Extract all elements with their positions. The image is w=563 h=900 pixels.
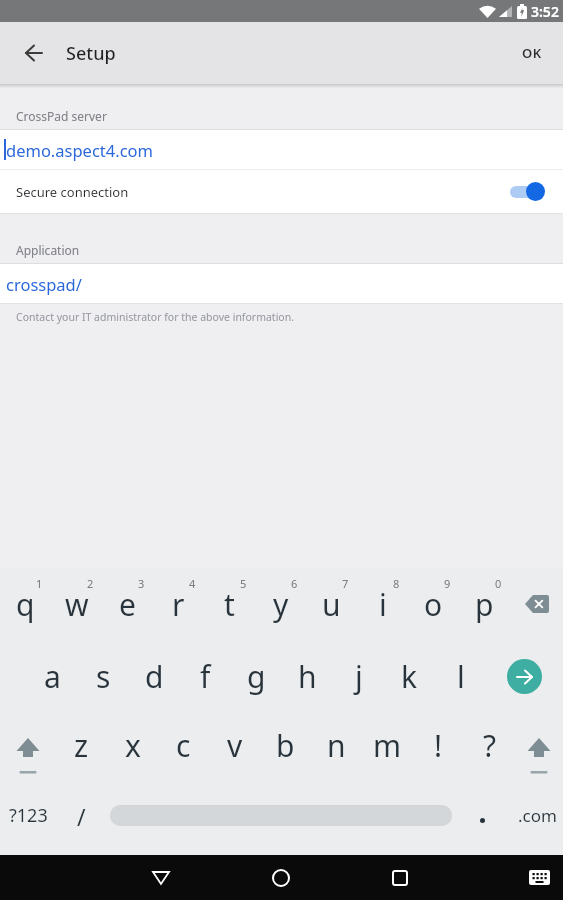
- button[interactable]: l: [435, 640, 486, 712]
- staticText: 3: [138, 576, 145, 591]
- button[interactable]: [0, 712, 56, 782]
- staticText: r: [172, 584, 185, 625]
- button[interactable]: 9: [408, 568, 459, 640]
- button[interactable]: OK: [517, 22, 547, 84]
- staticText: CrossPad server: [16, 108, 107, 124]
- button[interactable]: s: [78, 640, 129, 712]
- staticText: 5: [240, 576, 247, 591]
- staticText: o: [424, 584, 443, 625]
- staticText: .com: [518, 804, 557, 827]
- staticText: q: [16, 584, 35, 625]
- button[interactable]: crosspad/: [0, 264, 563, 303]
- staticText: 6: [291, 576, 298, 591]
- button[interactable]: Secure connection: [0, 170, 563, 213]
- button[interactable]: g: [231, 640, 282, 712]
- button[interactable]: [452, 782, 512, 855]
- staticText: 0: [495, 576, 502, 591]
- staticText: ?123: [9, 803, 48, 828]
- staticText: 8: [393, 576, 400, 591]
- button[interactable]: a: [27, 640, 78, 712]
- staticText: OK: [522, 44, 542, 62]
- button[interactable]: 0: [459, 568, 510, 640]
- staticText: Application: [16, 242, 80, 258]
- button[interactable]: v: [209, 712, 260, 782]
- button[interactable]: 7: [306, 568, 357, 640]
- button[interactable]: f: [180, 640, 231, 712]
- staticText: d: [145, 656, 164, 697]
- button[interactable]: .com: [512, 782, 563, 855]
- staticText: e: [119, 584, 136, 625]
- button[interactable]: h: [282, 640, 333, 712]
- staticText: 1: [36, 576, 43, 591]
- staticText: 2: [87, 576, 94, 591]
- button[interactable]: [139, 855, 183, 900]
- staticText: !: [434, 725, 443, 766]
- button[interactable]: z: [56, 712, 107, 782]
- staticText: i: [379, 584, 387, 625]
- staticText: b: [276, 725, 295, 766]
- button[interactable]: 1: [0, 568, 51, 640]
- staticText: t: [224, 584, 235, 625]
- staticText: y: [273, 584, 289, 625]
- button[interactable]: c: [158, 712, 209, 782]
- staticText: x: [125, 725, 141, 766]
- button[interactable]: [515, 712, 563, 782]
- staticText: u: [322, 584, 341, 625]
- button[interactable]: !: [413, 712, 464, 782]
- staticText: /: [77, 801, 86, 832]
- button[interactable]: x: [107, 712, 158, 782]
- button[interactable]: b: [260, 712, 311, 782]
- button[interactable]: d: [129, 640, 180, 712]
- button[interactable]: [517, 855, 561, 900]
- button[interactable]: ?123: [0, 782, 56, 855]
- staticText: w: [65, 584, 89, 625]
- staticText: 7: [342, 576, 349, 591]
- staticText: n: [327, 725, 346, 766]
- button[interactable]: [486, 640, 563, 712]
- button[interactable]: [510, 568, 563, 640]
- staticText: z: [74, 725, 89, 766]
- staticText: Setup: [66, 41, 116, 66]
- button[interactable]: 6: [255, 568, 306, 640]
- staticText: s: [96, 656, 111, 697]
- button[interactable]: k: [384, 640, 435, 712]
- staticText: f: [200, 656, 211, 697]
- button[interactable]: 3: [102, 568, 153, 640]
- button[interactable]: ?: [464, 712, 515, 782]
- staticText: 4: [189, 576, 196, 591]
- staticText: p: [475, 584, 494, 625]
- staticText: h: [298, 656, 317, 697]
- button[interactable]: [378, 855, 422, 900]
- staticText: crosspad/: [6, 273, 82, 295]
- staticText: j: [355, 656, 363, 697]
- button[interactable]: [12, 22, 56, 84]
- button[interactable]: demo.aspect4.com: [0, 130, 563, 169]
- button[interactable]: m: [362, 712, 413, 782]
- button[interactable]: j: [333, 640, 384, 712]
- button[interactable]: 8: [357, 568, 408, 640]
- staticText: demo.aspect4.com: [6, 139, 153, 161]
- button[interactable]: 5: [204, 568, 255, 640]
- staticText: 9: [444, 576, 451, 591]
- staticText: a: [44, 656, 61, 697]
- staticText: m: [373, 725, 402, 766]
- button[interactable]: [259, 855, 303, 900]
- staticText: l: [457, 656, 465, 697]
- button[interactable]: /: [56, 782, 106, 855]
- button[interactable]: 2: [51, 568, 102, 640]
- staticText: ?: [483, 725, 497, 766]
- staticText: v: [227, 725, 243, 766]
- staticText: Contact your IT administrator for the ab…: [16, 310, 295, 324]
- button[interactable]: 4: [153, 568, 204, 640]
- staticText: c: [176, 725, 191, 766]
- button[interactable]: n: [311, 712, 362, 782]
- staticText: g: [247, 656, 266, 697]
- staticText: 3:52: [531, 2, 559, 21]
- staticText: Secure connection: [16, 183, 129, 201]
- staticText: k: [401, 656, 418, 697]
